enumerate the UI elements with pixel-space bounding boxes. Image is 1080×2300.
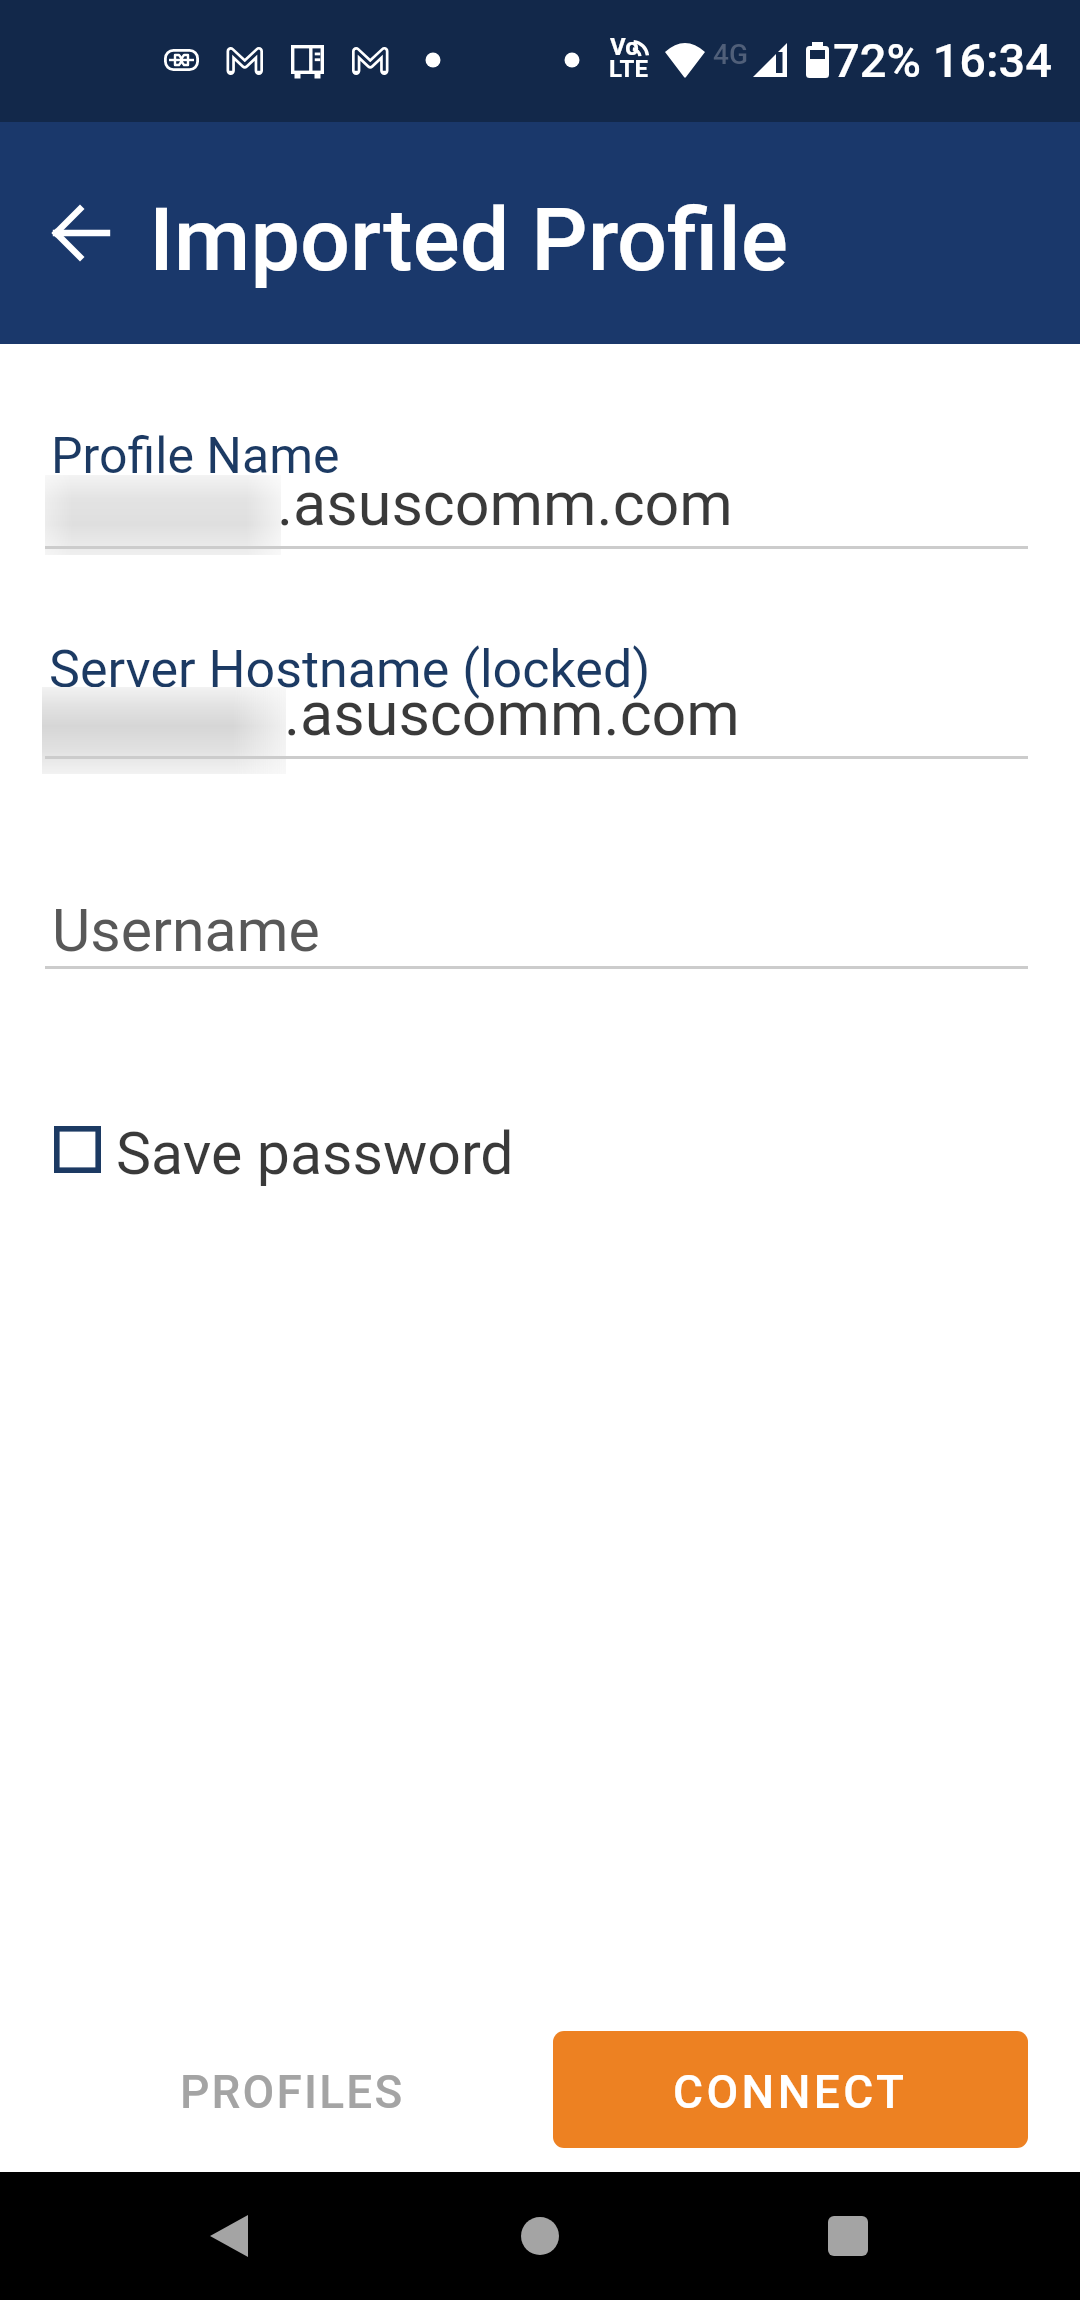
staticText: 4G bbox=[713, 38, 748, 71]
button[interactable]: Home bbox=[507, 2203, 573, 2269]
button[interactable]: CONNECT bbox=[553, 2031, 1028, 2148]
staticText: LTE bbox=[609, 55, 648, 83]
button[interactable]: Username bbox=[45, 875, 1028, 969]
staticText: PROFILES bbox=[180, 2065, 405, 2119]
button[interactable]: Profile Name bbox=[45, 410, 1028, 550]
button[interactable]: Recent apps bbox=[815, 2203, 881, 2269]
staticText: Vo bbox=[610, 33, 639, 61]
staticText: Imported Profile bbox=[149, 188, 789, 291]
staticText: Profile Name bbox=[51, 427, 340, 486]
staticText: Server Hostname (locked) bbox=[49, 639, 651, 700]
button[interactable]: Save password bbox=[45, 1100, 525, 1198]
button[interactable]: PROFILES bbox=[142, 2033, 442, 2151]
staticText: Save password bbox=[116, 1119, 514, 1188]
button[interactable]: Server Hostname (locked) bbox=[45, 620, 1028, 760]
button[interactable]: Back bbox=[21, 201, 85, 265]
staticText: 72% 16:34 bbox=[833, 33, 1052, 88]
staticText: CONNECT bbox=[673, 2065, 908, 2119]
staticText: Username bbox=[52, 896, 320, 965]
staticText: .asuscomm.com bbox=[277, 468, 733, 539]
staticText: .asuscomm.com bbox=[284, 678, 740, 749]
button[interactable]: Back bbox=[197, 2203, 263, 2269]
